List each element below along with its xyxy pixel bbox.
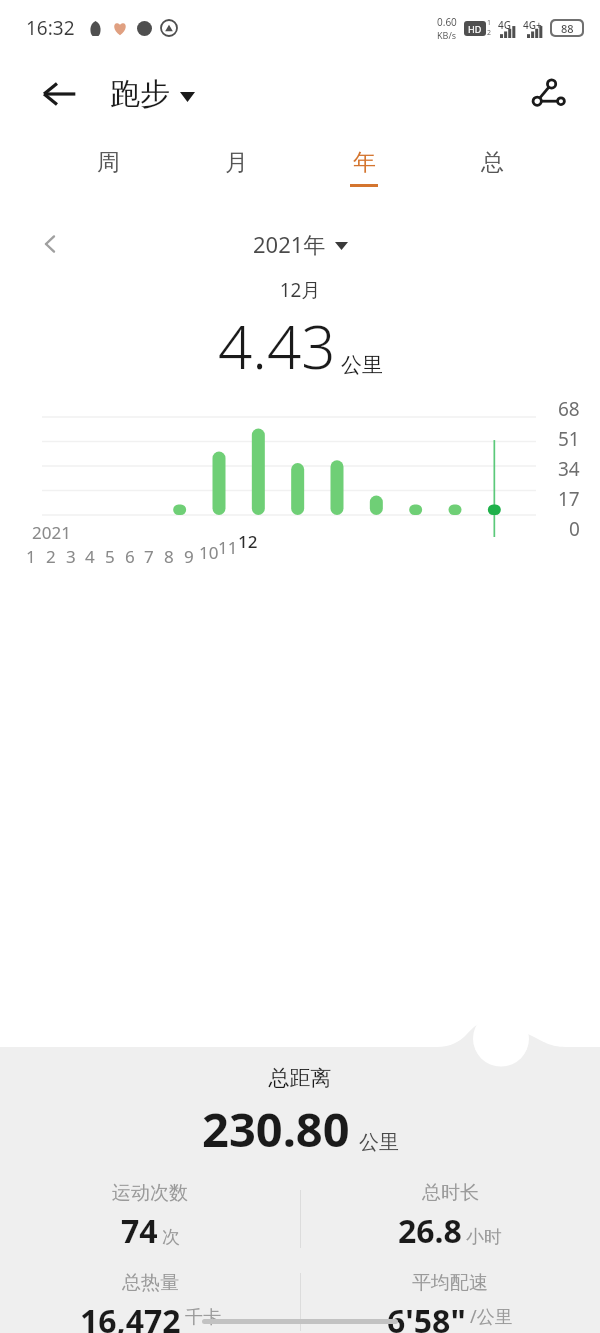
staticText: 2021年 bbox=[253, 229, 326, 259]
staticText: 4G+ bbox=[523, 18, 542, 32]
staticText: 11 bbox=[218, 536, 238, 559]
staticText: 12月 bbox=[0, 277, 600, 303]
staticText: 1 bbox=[487, 18, 492, 28]
staticText: 12 bbox=[238, 530, 258, 553]
staticText: 总距离 bbox=[0, 1065, 600, 1091]
staticText: 68 bbox=[558, 396, 580, 422]
button[interactable]: 月 bbox=[206, 148, 266, 187]
staticText: 4G bbox=[498, 18, 511, 32]
staticText: 运动次数 bbox=[112, 1181, 188, 1205]
staticText: 6'58" bbox=[387, 1299, 466, 1333]
button[interactable]: Previous year bbox=[26, 223, 74, 265]
staticText: 2 bbox=[487, 28, 492, 38]
button[interactable]: 2021年 bbox=[253, 229, 348, 259]
staticText: 8 bbox=[164, 545, 174, 568]
button[interactable]: 运动次数 bbox=[0, 1181, 300, 1257]
button[interactable]: 总热量 bbox=[0, 1271, 300, 1333]
staticText: 月 bbox=[225, 148, 248, 177]
staticText: 7 bbox=[144, 545, 154, 568]
staticText: 3 bbox=[66, 545, 76, 568]
button[interactable]: 总 bbox=[462, 148, 522, 187]
staticText: 51 bbox=[558, 426, 580, 452]
staticText: 6 bbox=[125, 545, 135, 568]
button[interactable]: 年 bbox=[334, 148, 394, 187]
staticText: 平均配速 bbox=[412, 1271, 488, 1295]
staticText: 2 bbox=[46, 545, 56, 568]
staticText: 4.43 bbox=[218, 305, 336, 387]
button[interactable]: Back bbox=[30, 65, 88, 123]
staticText: 跑步 bbox=[110, 75, 170, 113]
staticText: 2021 bbox=[32, 521, 71, 544]
staticText: KB/s bbox=[437, 29, 457, 41]
staticText: 总热量 bbox=[122, 1271, 179, 1295]
staticText: 次 bbox=[162, 1226, 180, 1249]
button[interactable]: 平均配速 bbox=[300, 1271, 600, 1333]
staticText: 总时长 bbox=[422, 1181, 479, 1205]
staticText: 5 bbox=[105, 545, 115, 568]
staticText: 周 bbox=[97, 148, 120, 177]
staticText: 230.80 bbox=[202, 1097, 350, 1161]
staticText: 年 bbox=[353, 148, 376, 177]
staticText: 16:32 bbox=[26, 15, 75, 41]
staticText: 小时 bbox=[466, 1226, 502, 1249]
staticText: 千卡 bbox=[185, 1306, 221, 1329]
staticText: 4 bbox=[85, 545, 95, 568]
staticText: 1 bbox=[26, 545, 36, 568]
staticText: 26.8 bbox=[398, 1209, 462, 1253]
button[interactable]: Share bbox=[520, 66, 576, 122]
staticText: 34 bbox=[558, 456, 580, 482]
staticText: 17 bbox=[558, 486, 580, 512]
staticText: 公里 bbox=[359, 1130, 399, 1155]
staticText: 公里 bbox=[341, 352, 383, 378]
staticText: 74 bbox=[121, 1209, 158, 1253]
staticText: 9 bbox=[184, 545, 194, 568]
button[interactable]: 周 bbox=[78, 148, 138, 187]
staticText: HD bbox=[468, 23, 482, 35]
staticText: 0 bbox=[569, 516, 580, 542]
staticText: 总 bbox=[481, 148, 504, 177]
staticText: 10 bbox=[199, 541, 219, 564]
staticText: 16,472 bbox=[80, 1299, 181, 1333]
button[interactable]: 跑步 bbox=[110, 75, 195, 113]
staticText: /公里 bbox=[470, 1304, 513, 1329]
staticText: 88 bbox=[561, 21, 574, 35]
button[interactable]: 总时长 bbox=[300, 1181, 600, 1257]
staticText: 0.60 bbox=[437, 15, 457, 29]
